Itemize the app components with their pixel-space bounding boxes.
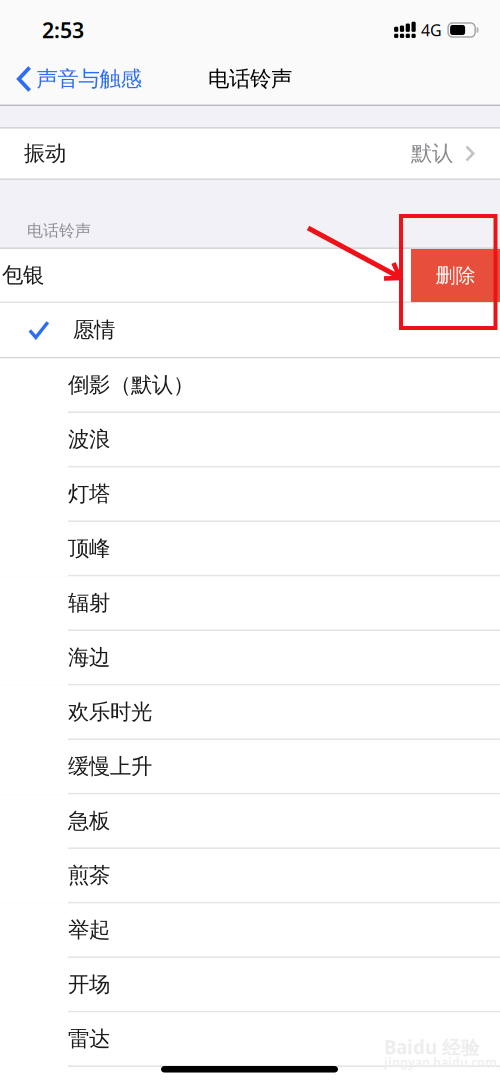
staticText: 声音与触感 bbox=[36, 66, 141, 92]
staticText: 海边 bbox=[68, 644, 110, 670]
button[interactable]: 开场 bbox=[0, 958, 500, 1012]
button[interactable]: 欢乐时光 bbox=[0, 685, 500, 740]
staticText: 倒影（默认） bbox=[68, 372, 194, 398]
button[interactable]: 煎茶 bbox=[0, 849, 500, 903]
staticText: 电话铃声 bbox=[208, 66, 292, 92]
staticText: 顶峰 bbox=[68, 535, 110, 561]
staticText: 缓慢上升 bbox=[68, 753, 152, 779]
button[interactable]: 波浪 bbox=[0, 413, 500, 467]
staticText: 雷达 bbox=[68, 1026, 110, 1052]
button[interactable]: 删除 bbox=[411, 249, 500, 302]
staticText: 欢乐时光 bbox=[68, 699, 152, 725]
staticText: 包银 bbox=[2, 262, 44, 288]
button[interactable]: 雷达 bbox=[0, 1012, 500, 1067]
staticText: 2:53 bbox=[42, 16, 84, 44]
button[interactable]: 灯塔 bbox=[0, 467, 500, 522]
staticText: jingyan.baidu.com bbox=[384, 1054, 497, 1070]
staticText: 愿情 bbox=[73, 317, 115, 343]
button[interactable]: 声音与触感 bbox=[0, 52, 151, 106]
staticText: 辐射 bbox=[68, 590, 110, 616]
staticText: 电话铃声 bbox=[27, 221, 91, 240]
staticText: 灯塔 bbox=[68, 481, 110, 507]
button[interactable]: 辐射 bbox=[0, 576, 500, 631]
staticText: 开场 bbox=[68, 971, 110, 997]
button[interactable]: 举起 bbox=[0, 903, 500, 958]
staticText: 急板 bbox=[68, 808, 110, 834]
button[interactable]: 顶峰 bbox=[0, 522, 500, 576]
button[interactable]: 振动 bbox=[0, 127, 500, 180]
staticText: Baidu 经验 bbox=[384, 1035, 480, 1059]
staticText: 删除 bbox=[435, 263, 475, 288]
staticText: 振动 bbox=[24, 140, 66, 167]
button[interactable]: 倒影（默认） bbox=[0, 358, 500, 413]
staticText: 默认 bbox=[411, 140, 453, 167]
button[interactable]: 缓慢上升 bbox=[0, 740, 500, 794]
staticText: 举起 bbox=[68, 917, 110, 943]
button[interactable]: 愿情 bbox=[0, 303, 500, 358]
staticText: 煎茶 bbox=[68, 862, 110, 888]
button[interactable]: 海边 bbox=[0, 631, 500, 685]
staticText: 波浪 bbox=[68, 426, 110, 452]
button[interactable]: 急板 bbox=[0, 794, 500, 849]
staticText: 4G bbox=[421, 19, 442, 41]
